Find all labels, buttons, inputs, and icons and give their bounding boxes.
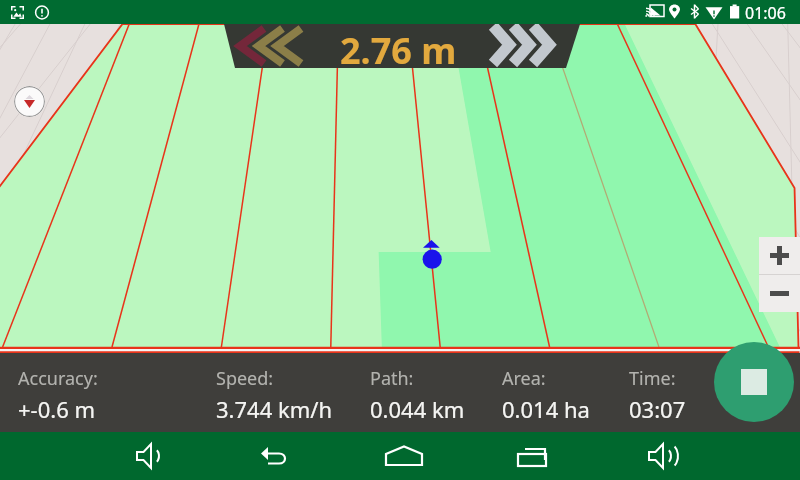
staticText: 3.744 km/h — [216, 394, 333, 424]
button[interactable]: Home — [340, 432, 468, 480]
staticText: +-0.6 m — [18, 394, 96, 424]
button[interactable]: Volume down — [84, 432, 212, 480]
button[interactable]: Stop recording — [714, 342, 794, 422]
staticText: Accuracy: — [18, 366, 98, 391]
button[interactable]: Zoom in — [759, 237, 800, 274]
staticText: Area: — [502, 366, 546, 391]
button[interactable]: Volume up — [596, 432, 724, 480]
staticText: 2.76 m — [340, 26, 457, 75]
button[interactable]: Back — [212, 432, 340, 480]
staticText: 0.014 ha — [502, 394, 590, 424]
staticText: 0.044 km — [370, 394, 465, 424]
staticText: Time: — [629, 366, 676, 391]
button[interactable]: Compass — [14, 86, 45, 117]
button[interactable]: Zoom out — [759, 275, 800, 312]
staticText: 01:06 — [745, 2, 786, 24]
staticText: Path: — [370, 366, 414, 391]
staticText: Speed: — [216, 366, 274, 391]
staticText: 03:07 — [629, 394, 686, 424]
button[interactable]: Recents — [468, 432, 596, 480]
